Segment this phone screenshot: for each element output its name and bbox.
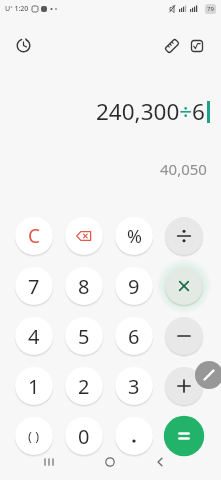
button[interactable]: 3 bbox=[115, 367, 153, 405]
button[interactable]: % bbox=[115, 217, 153, 255]
button[interactable] bbox=[41, 454, 57, 470]
button[interactable]: 9 bbox=[115, 267, 153, 305]
staticText: ( ) bbox=[28, 427, 40, 445]
staticText: 8 bbox=[78, 273, 90, 300]
button[interactable]: 6 bbox=[115, 317, 153, 355]
button[interactable] bbox=[10, 32, 37, 59]
button[interactable]: 0 bbox=[65, 417, 103, 455]
button[interactable]: 4 bbox=[15, 317, 53, 355]
button[interactable]: C bbox=[15, 217, 53, 255]
staticText: 2 bbox=[78, 373, 90, 400]
button[interactable]: 5 bbox=[65, 317, 103, 355]
button[interactable] bbox=[184, 33, 210, 59]
staticText: 0 bbox=[78, 423, 90, 450]
staticText: 3 bbox=[128, 373, 140, 400]
button[interactable]: 7 bbox=[15, 267, 53, 305]
staticText: C bbox=[28, 223, 41, 249]
staticText: 9 bbox=[128, 273, 140, 300]
staticText: 40,050 bbox=[160, 159, 207, 179]
button[interactable] bbox=[165, 217, 203, 255]
button[interactable] bbox=[165, 267, 203, 305]
staticText: 7 bbox=[28, 273, 40, 300]
staticText: 1 bbox=[28, 373, 40, 400]
staticText: % bbox=[127, 224, 142, 249]
button[interactable]: 1 bbox=[15, 367, 53, 405]
button[interactable] bbox=[165, 417, 203, 455]
button[interactable] bbox=[65, 217, 103, 255]
staticText: 240,300÷6 bbox=[96, 96, 205, 127]
button[interactable]: 2 bbox=[65, 367, 103, 405]
staticText: 5 bbox=[78, 323, 90, 350]
button[interactable] bbox=[195, 361, 221, 389]
staticText: 79 bbox=[207, 5, 214, 13]
button[interactable]: ( ) bbox=[15, 417, 53, 455]
button[interactable] bbox=[102, 454, 118, 470]
button[interactable] bbox=[152, 454, 168, 470]
button[interactable] bbox=[159, 33, 185, 59]
button[interactable] bbox=[115, 417, 153, 455]
staticText: 6 bbox=[128, 323, 140, 350]
button[interactable]: 8 bbox=[65, 267, 103, 305]
staticText: U⁺ 1:20 bbox=[5, 4, 29, 14]
button[interactable] bbox=[165, 367, 203, 405]
button[interactable] bbox=[165, 317, 203, 355]
staticText: 4 bbox=[28, 323, 40, 350]
